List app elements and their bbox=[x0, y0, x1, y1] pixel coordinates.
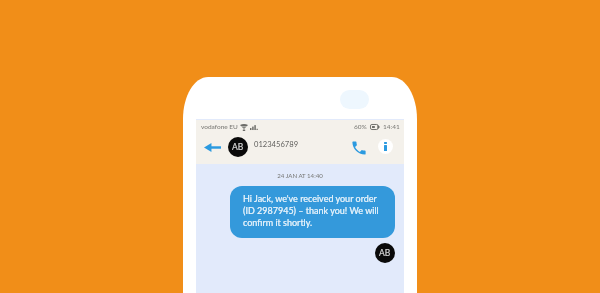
staticText: AB bbox=[379, 248, 391, 258]
button[interactable]: Contact avatar AB bbox=[228, 137, 248, 157]
staticText: 60% bbox=[354, 123, 367, 131]
staticText: 24 JAN AT 14:40 bbox=[196, 172, 404, 179]
button[interactable]: Hi Jack, we've received your order (ID 2… bbox=[230, 186, 395, 238]
staticText: Hi Jack, we've received your order (ID 2… bbox=[243, 193, 382, 228]
button[interactable]: Sender avatar AB bbox=[375, 243, 395, 263]
staticText: 14:41 bbox=[383, 123, 400, 131]
staticText: AB bbox=[232, 142, 244, 152]
staticText: vodafone EU bbox=[201, 123, 238, 131]
button[interactable]: Info bbox=[378, 139, 393, 154]
button[interactable]: Call bbox=[350, 139, 368, 157]
button[interactable]: Back bbox=[200, 139, 225, 155]
staticText: 0123456789 bbox=[254, 139, 299, 148]
